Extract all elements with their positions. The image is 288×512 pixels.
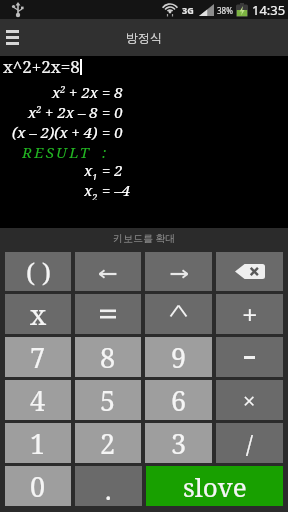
staticText: ( (26, 254, 35, 289)
staticText: 9 (171, 339, 187, 376)
button[interactable]: 9 (145, 337, 212, 377)
button[interactable]: 3 (145, 423, 212, 463)
staticText: slove (183, 469, 247, 504)
staticText: 4 (30, 382, 46, 419)
button[interactable]: 4 (5, 380, 71, 420)
staticText: = 2 (98, 160, 123, 180)
staticText: 14:35 (252, 1, 286, 19)
staticText: 키보드를 확대 (113, 231, 176, 245)
staticText: = 0 (98, 102, 123, 122)
button[interactable]: 2 (75, 423, 141, 463)
staticText: / (246, 427, 253, 460)
staticText: : (98, 142, 107, 160)
staticText: 38% (217, 5, 233, 16)
button[interactable]: 1 (5, 423, 71, 463)
button[interactable] (75, 252, 141, 291)
staticText: 3G (182, 4, 194, 16)
button[interactable] (75, 294, 141, 334)
button[interactable]: × (216, 380, 283, 420)
button[interactable] (145, 252, 212, 291)
button[interactable]: 7 (5, 337, 71, 377)
staticText: 0 (30, 468, 46, 505)
staticText: x1 (84, 160, 98, 180)
staticText: x2 (84, 180, 98, 200)
staticText: = –4 (98, 180, 131, 200)
staticText: RESULT (22, 142, 98, 160)
staticText: = 0 (98, 122, 123, 142)
button[interactable]: / (216, 423, 283, 463)
staticText: = 8 (98, 82, 123, 102)
staticText: x2 + 2x – 8 (28, 102, 98, 122)
button[interactable]: 5 (75, 380, 141, 420)
staticText: 방정식 (126, 30, 162, 45)
button[interactable]: slove (146, 466, 283, 506)
button[interactable]: 0 (5, 466, 71, 506)
button[interactable] (216, 252, 283, 291)
staticText: 7 (30, 339, 46, 376)
staticText: x^2+2x=8 (3, 55, 80, 78)
staticText: 3 (171, 425, 187, 462)
button[interactable] (145, 294, 212, 334)
staticText: + (242, 295, 258, 333)
staticText: x2 + 2x (52, 82, 98, 102)
button[interactable] (216, 337, 283, 377)
staticText: 6 (171, 382, 187, 419)
staticText: x (30, 295, 47, 333)
staticText: 5 (100, 382, 116, 419)
staticText: ) (42, 254, 51, 289)
staticText: . (105, 472, 112, 507)
button[interactable]: + (216, 294, 283, 334)
button[interactable]: ( (5, 252, 71, 291)
button[interactable]: 6 (145, 380, 212, 420)
staticText: (x – 2)(x + 4) (12, 122, 98, 142)
staticText: × (243, 385, 256, 415)
staticText: 8 (100, 339, 116, 376)
button[interactable]: . (75, 466, 142, 506)
button[interactable]: x (5, 294, 71, 334)
staticText: 2 (100, 425, 116, 462)
staticText: 1 (30, 425, 46, 462)
button[interactable]: 8 (75, 337, 141, 377)
button[interactable] (6, 30, 19, 45)
